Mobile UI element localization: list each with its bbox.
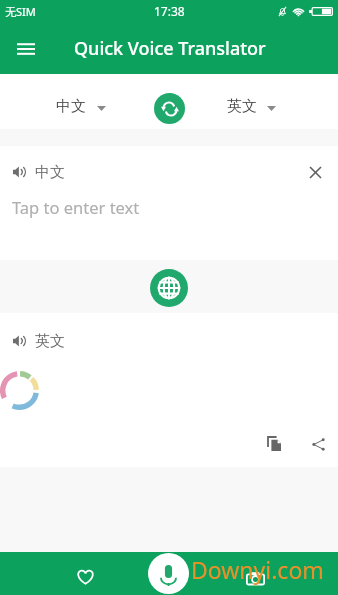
button[interactable]: Favorites [68,560,102,594]
staticText: 中文 [56,97,86,116]
button[interactable]: Translate [150,269,188,307]
staticText: 无SIM [5,4,36,19]
button[interactable]: Menu [9,31,43,65]
button[interactable]: Camera [238,561,272,595]
staticText: 英文 [35,332,65,351]
button[interactable]: Clear text [301,158,329,186]
staticText: Quick Voice Translator [74,36,266,61]
staticText: 英文 [227,97,257,116]
button[interactable]: Voice input [148,553,189,594]
button[interactable]: Swap languages [154,93,185,124]
button[interactable]: Share [304,430,332,458]
button[interactable]: Speak source text [0,160,65,184]
button[interactable]: Tap to enter text [12,196,140,218]
button[interactable]: Speak translated text [0,329,65,353]
staticText: 中文 [35,163,65,182]
button[interactable]: 英文 [216,88,286,118]
staticText: Downyi.com [191,554,324,585]
button[interactable]: Copy [260,430,288,458]
button[interactable]: 中文 [45,88,115,118]
staticText: 17:38 [154,3,185,19]
